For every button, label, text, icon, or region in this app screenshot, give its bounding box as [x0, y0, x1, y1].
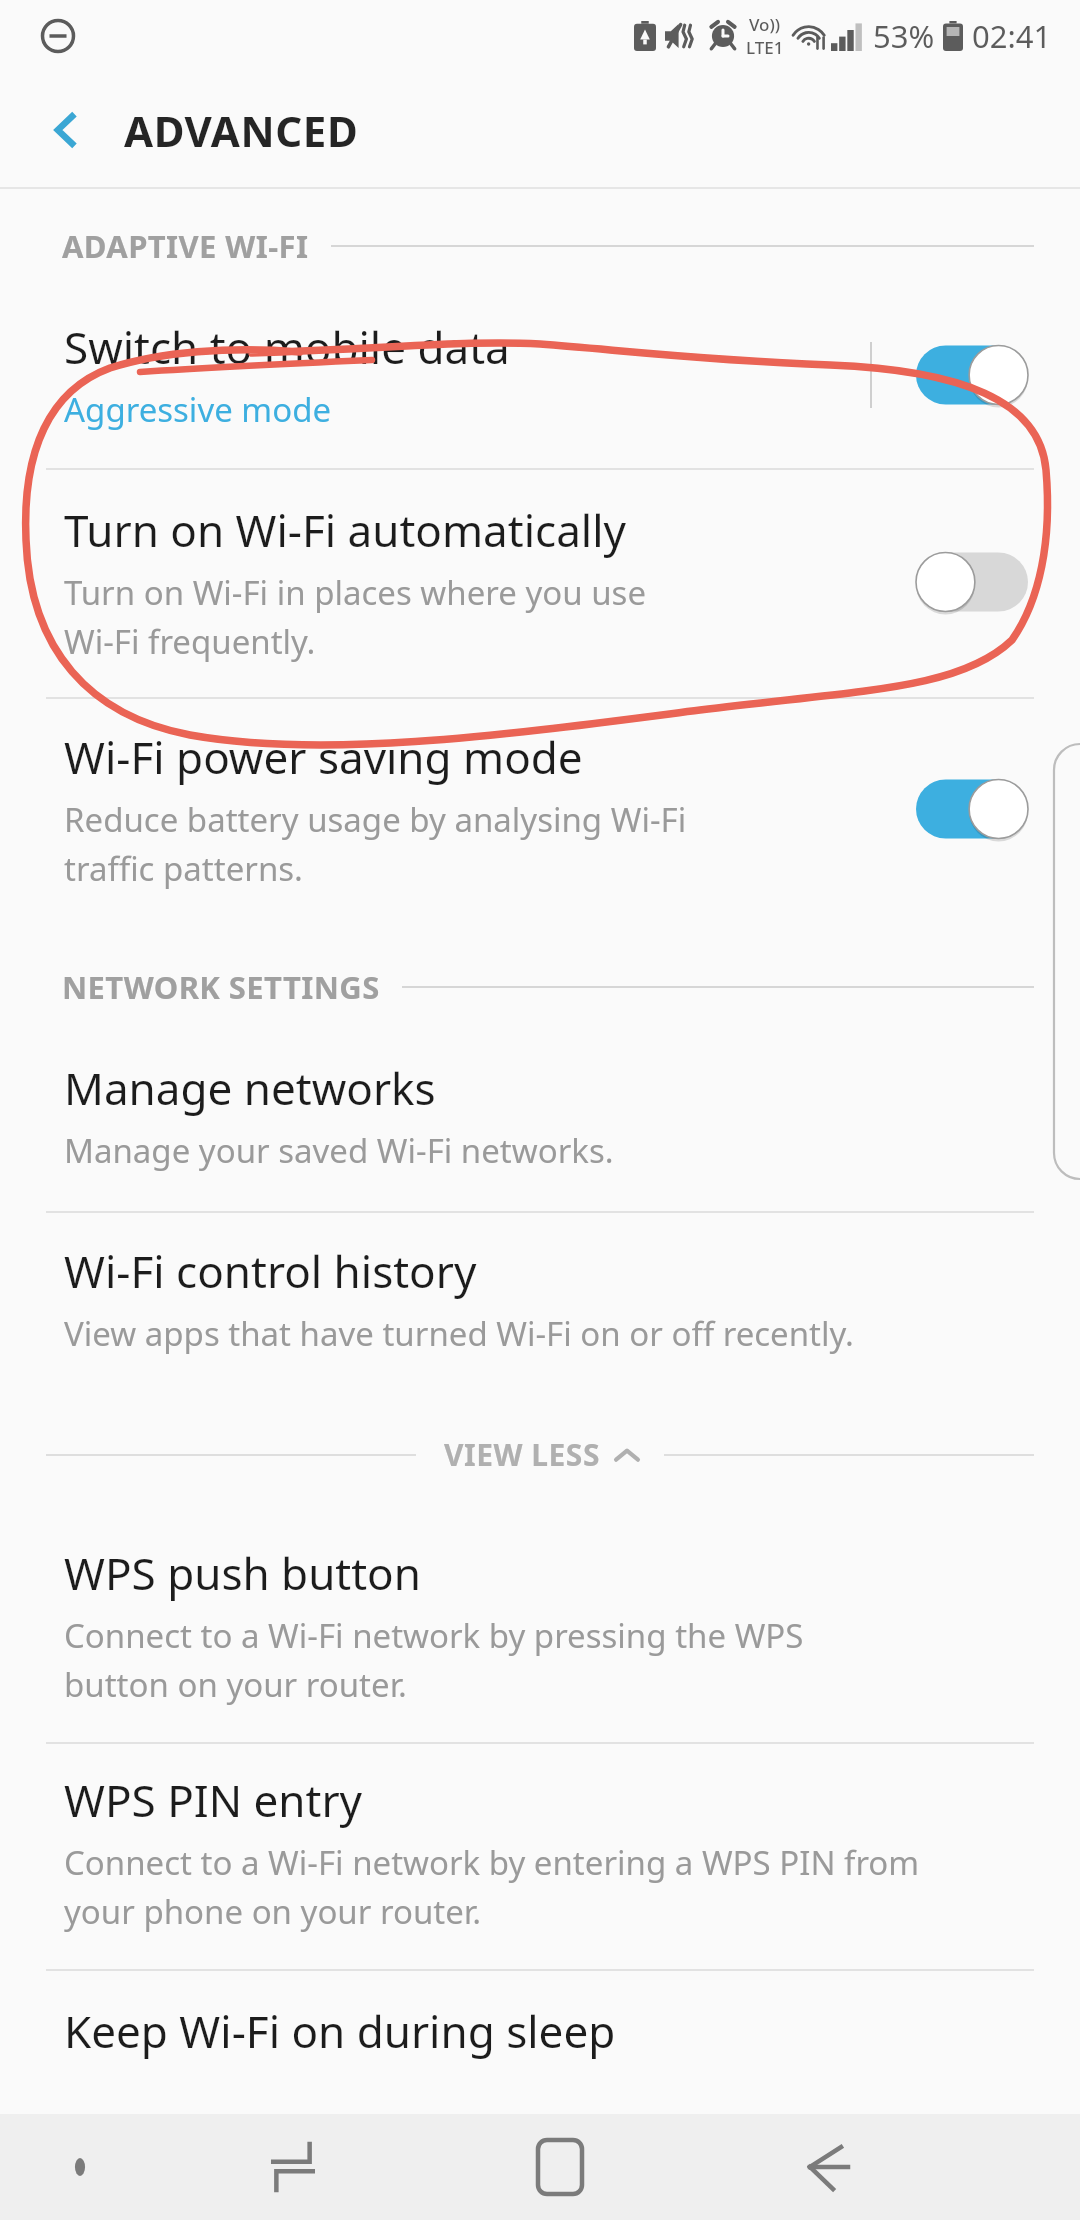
- button[interactable]: WPS PIN entry: [0, 1744, 1080, 1969]
- button[interactable]: Keep Wi-Fi on during sleep: [0, 1971, 1080, 2061]
- button[interactable]: Back: [693, 2114, 960, 2220]
- staticText: LTE1: [746, 36, 784, 59]
- staticText: 53%: [873, 15, 935, 57]
- button[interactable]: Toggle on: [916, 343, 1028, 407]
- button[interactable]: Navigate up: [36, 100, 96, 160]
- button[interactable]: WPS push button: [0, 1517, 1080, 1742]
- staticText: Keep Wi-Fi on during sleep: [64, 2001, 616, 2061]
- button[interactable]: Recent apps: [160, 2114, 426, 2220]
- staticText: Manage your saved Wi-Fi networks.: [64, 1128, 614, 1173]
- staticText: WPS PIN entry: [64, 1770, 363, 1830]
- button[interactable]: Toggle on: [916, 777, 1028, 841]
- staticText: NETWORK SETTINGS: [62, 966, 380, 1008]
- button[interactable]: VIEW LESS: [0, 1418, 1080, 1491]
- button[interactable]: Home: [426, 2114, 693, 2220]
- button[interactable]: Turn on Wi-Fi automatically: [0, 470, 1080, 697]
- staticText: 02:41: [972, 15, 1052, 57]
- staticText: Vo)): [749, 13, 781, 36]
- staticText: Switch to mobile data: [64, 317, 510, 377]
- staticText: Connect to a Wi-Fi network by entering a…: [64, 1840, 920, 1933]
- staticText: Turn on Wi-Fi automatically: [64, 500, 626, 560]
- staticText: Connect to a Wi-Fi network by pressing t…: [64, 1613, 804, 1706]
- button[interactable]: Wi-Fi power saving mode: [0, 699, 1080, 930]
- button[interactable]: Switch to mobile data: [0, 293, 1080, 468]
- staticText: Turn on Wi-Fi in places where you use Wi…: [64, 570, 647, 663]
- staticText: Wi-Fi control history: [64, 1241, 477, 1301]
- button[interactable]: Wi-Fi control history: [0, 1213, 1080, 1396]
- staticText: ADVANCED: [124, 102, 359, 159]
- staticText: ADAPTIVE WI-FI: [62, 225, 309, 267]
- staticText: WPS push button: [64, 1543, 421, 1603]
- staticText: Manage networks: [64, 1058, 436, 1118]
- button[interactable]: Manage networks: [0, 1032, 1080, 1211]
- staticText: Reduce battery usage by analysing Wi-Fi …: [64, 797, 687, 890]
- staticText: Aggressive mode: [64, 387, 332, 432]
- staticText: VIEW LESS: [444, 1434, 600, 1475]
- staticText: Wi-Fi power saving mode: [64, 727, 583, 787]
- button[interactable]: Toggle off: [916, 550, 1028, 614]
- staticText: View apps that have turned Wi-Fi on or o…: [64, 1311, 854, 1356]
